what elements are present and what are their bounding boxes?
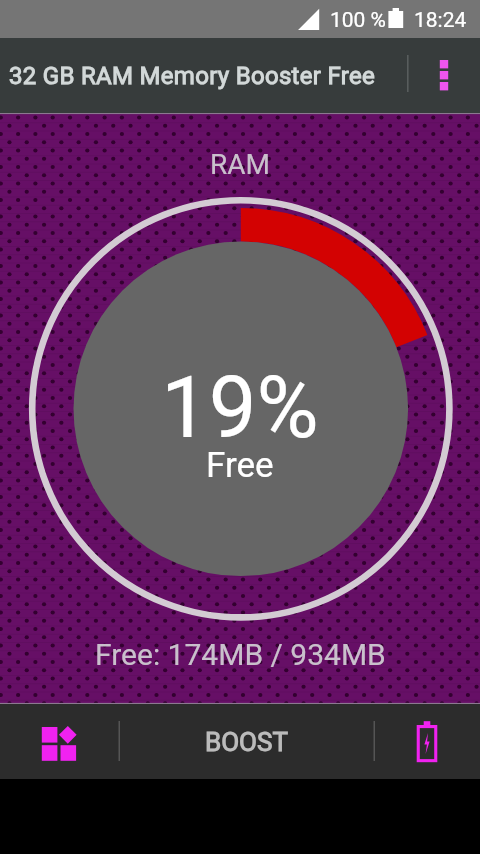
staticText: BOOST [205, 727, 288, 757]
button[interactable]: Apps [0, 704, 119, 779]
staticText: Free [206, 445, 274, 486]
button[interactable]: More options [408, 38, 480, 113]
staticText: 32 GB RAM Memory Booster Free [9, 62, 376, 90]
staticText: RAM [210, 148, 270, 181]
button[interactable]: BOOST [119, 704, 374, 779]
staticText: 18:24 [414, 8, 467, 33]
staticText: 100 % [330, 8, 386, 33]
staticText: Free: 174MB / 934MB [95, 637, 386, 672]
staticText: 19% [161, 358, 319, 458]
button[interactable]: Battery saver [374, 704, 480, 779]
